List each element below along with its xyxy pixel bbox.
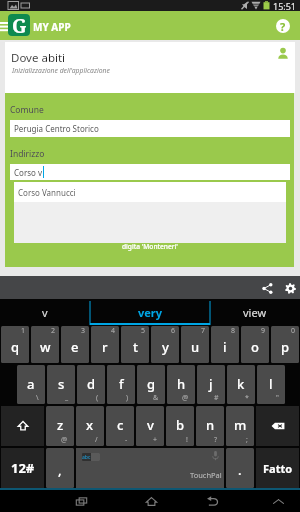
- staticText: j: [209, 375, 213, 393]
- staticText: #: [214, 393, 219, 403]
- button[interactable]: Fatto: [256, 448, 299, 488]
- button[interactable]: 0: [271, 326, 299, 363]
- staticText: t: [133, 338, 138, 356]
- button[interactable]: 6: [151, 326, 179, 363]
- button[interactable]: -: [106, 406, 134, 446]
- staticText: very: [138, 305, 163, 320]
- button[interactable]: #: [197, 365, 225, 404]
- staticText: Inizializzazione dell'applicazione: [12, 66, 110, 75]
- button[interactable]: 3: [61, 326, 89, 363]
- staticText: ,: [58, 461, 62, 479]
- staticText: ?: [214, 435, 218, 445]
- staticText: abc: [82, 454, 91, 461]
- button[interactable]: 4: [91, 326, 119, 363]
- button[interactable]: Help: [276, 19, 290, 33]
- staticText: *: [245, 393, 249, 403]
- staticText: Perugia Centro Storico: [14, 123, 99, 134]
- button[interactable]: 7: [181, 326, 209, 363]
- staticText: digita 'Monteneri': [122, 242, 178, 251]
- staticText: ;: [246, 435, 248, 445]
- staticText: 3: [81, 326, 86, 336]
- staticText: Corso v: [14, 167, 43, 178]
- button[interactable]: view: [210, 299, 300, 325]
- staticText: n: [206, 416, 215, 434]
- staticText: 9: [261, 326, 266, 336]
- button[interactable]: ": [257, 365, 285, 404]
- staticText: f: [119, 375, 124, 393]
- staticText: 6: [171, 326, 176, 336]
- button[interactable]: ?: [196, 406, 224, 446]
- button[interactable]: 1: [1, 326, 29, 363]
- staticText: 8: [231, 326, 236, 336]
- staticText: a: [27, 375, 35, 393]
- staticText: +: [153, 435, 158, 445]
- button[interactable]: *: [227, 365, 255, 404]
- staticText: \: [36, 393, 39, 403]
- button[interactable]: very: [90, 299, 210, 325]
- button[interactable]: Backspace: [256, 406, 299, 446]
- staticText: @: [182, 393, 189, 403]
- staticText: 15:51: [273, 0, 297, 11]
- button[interactable]: !: [166, 406, 194, 446]
- button[interactable]: ,: [46, 448, 74, 488]
- button[interactable]: 2: [31, 326, 59, 363]
- button[interactable]: _: [47, 365, 75, 404]
- staticText: Indirizzo: [10, 148, 45, 160]
- button[interactable]: Home: [131, 490, 171, 512]
- staticText: w: [40, 338, 51, 356]
- staticText: ": [276, 393, 279, 403]
- button[interactable]: Perugia Centro Storico: [10, 120, 290, 137]
- button[interactable]: @: [46, 406, 74, 446]
- staticText: b: [176, 416, 185, 434]
- button[interactable]: 5: [121, 326, 149, 363]
- button[interactable]: 9: [241, 326, 269, 363]
- button[interactable]: Corso v: [10, 164, 290, 180]
- staticText: 12#: [11, 459, 35, 477]
- button[interactable]: ;: [226, 406, 254, 446]
- staticText: ): [126, 393, 129, 403]
- button[interactable]: Settings: [281, 279, 299, 297]
- button[interactable]: Share: [258, 279, 276, 297]
- staticText: !: [186, 435, 188, 445]
- staticText: &: [153, 393, 159, 403]
- button[interactable]: Recent apps: [61, 490, 101, 512]
- staticText: o: [251, 338, 259, 356]
- button[interactable]: Menu: [0, 11, 8, 40]
- button[interactable]: Hide keyboard: [258, 490, 298, 512]
- staticText: _: [65, 393, 69, 403]
- button[interactable]: &: [137, 365, 165, 404]
- button[interactable]: 8: [211, 326, 239, 363]
- button[interactable]: +: [136, 406, 164, 446]
- button[interactable]: /: [76, 406, 104, 446]
- staticText: Corso Vannucci: [18, 187, 76, 198]
- button[interactable]: Shift: [1, 406, 44, 446]
- staticText: @: [61, 435, 68, 445]
- button[interactable]: 12#: [1, 448, 44, 488]
- staticText: 1: [21, 326, 26, 336]
- button[interactable]: .: [226, 448, 254, 488]
- staticText: 0: [291, 326, 296, 336]
- staticText: TouchPal: [190, 470, 222, 480]
- staticText: .: [238, 461, 242, 479]
- button[interactable]: @: [167, 365, 195, 404]
- button[interactable]: v: [0, 299, 90, 325]
- button[interactable]: \: [17, 365, 45, 404]
- staticText: (: [96, 393, 99, 403]
- button[interactable]: ): [107, 365, 135, 404]
- staticText: 7: [201, 326, 206, 336]
- button[interactable]: Space: [76, 448, 224, 488]
- button[interactable]: Corso Vannucci: [14, 182, 286, 202]
- staticText: MY APP: [33, 20, 71, 34]
- staticText: m: [234, 416, 247, 434]
- staticText: Dove abiti: [11, 50, 66, 66]
- staticText: G: [12, 14, 27, 35]
- staticText: d: [87, 375, 96, 393]
- staticText: y: [162, 338, 169, 356]
- staticText: h: [177, 375, 186, 393]
- button[interactable]: Back: [192, 490, 232, 512]
- staticText: 4: [111, 326, 116, 336]
- button[interactable]: (: [77, 365, 105, 404]
- staticText: q: [11, 338, 20, 356]
- staticText: u: [191, 338, 200, 356]
- staticText: /: [95, 435, 98, 445]
